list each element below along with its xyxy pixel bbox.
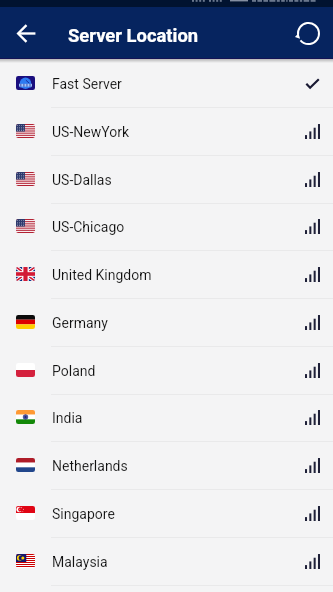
staticText: Poland — [52, 363, 96, 379]
button[interactable]: Malaysia — [0, 538, 333, 586]
staticText: Netherlands — [52, 458, 128, 474]
button[interactable]: Netherlands — [0, 442, 333, 490]
staticText: Singapore — [52, 506, 115, 522]
button[interactable]: United Kingdom — [0, 251, 333, 299]
staticText: US-Chicago — [52, 219, 125, 235]
staticText: United Kingdom — [52, 267, 152, 283]
button[interactable]: US-Chicago — [0, 203, 333, 251]
button[interactable]: Poland — [0, 347, 333, 395]
button[interactable]: Refresh — [288, 13, 328, 53]
staticText: US-Dallas — [52, 172, 112, 188]
button[interactable]: Back — [6, 13, 46, 53]
staticText: Server Location — [68, 25, 199, 47]
staticText: Fast Server — [52, 76, 122, 92]
button[interactable]: Singapore — [0, 490, 333, 538]
button[interactable]: Germany — [0, 299, 333, 347]
staticText: India — [52, 410, 83, 426]
staticText: US-NewYork — [52, 124, 129, 140]
button[interactable]: India — [0, 394, 333, 442]
button[interactable]: US-NewYork — [0, 108, 333, 156]
staticText: Germany — [52, 315, 108, 331]
staticText: Malaysia — [52, 554, 108, 570]
button[interactable]: US-Dallas — [0, 156, 333, 204]
button[interactable]: Fast Server — [0, 60, 333, 108]
